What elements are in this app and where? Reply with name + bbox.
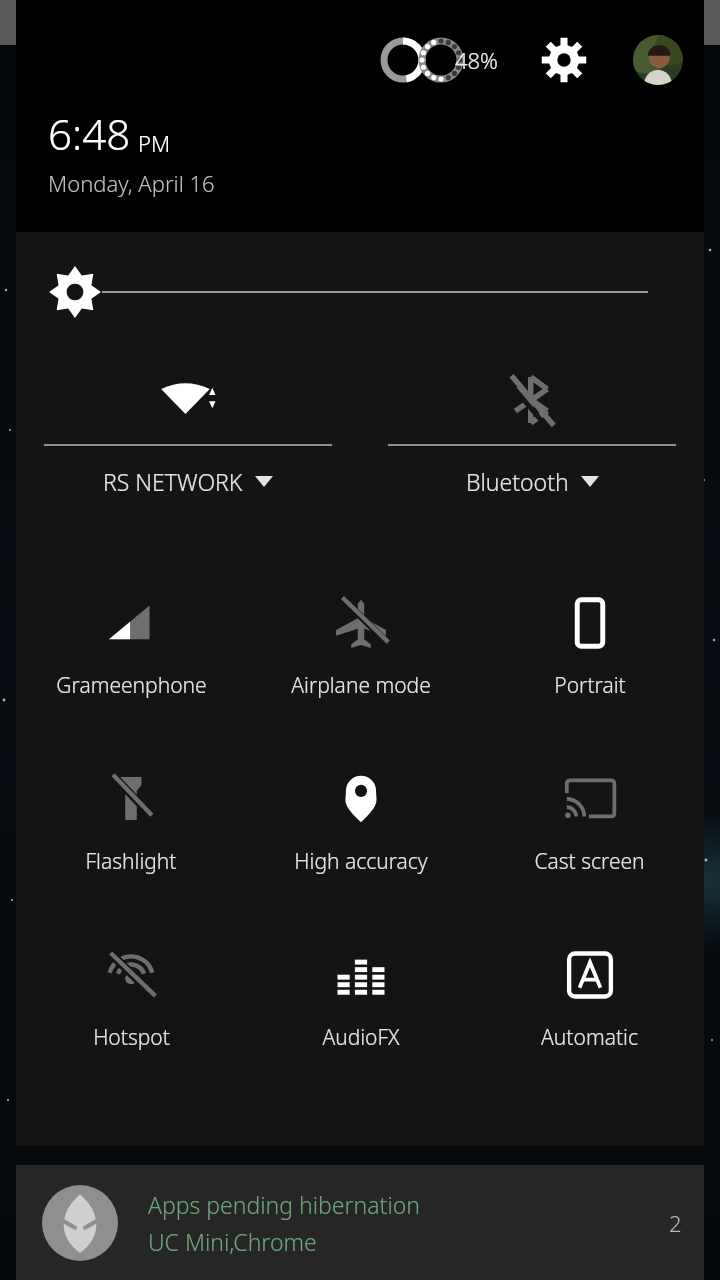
staticText: Bluetooth xyxy=(466,466,569,497)
staticText: Cast screen xyxy=(534,847,645,876)
staticText: Automatic xyxy=(541,1023,638,1052)
staticText: Flashlight xyxy=(85,847,177,876)
staticText: UC Mini,Chrome xyxy=(148,1226,317,1257)
staticText: Portrait xyxy=(554,671,626,700)
button[interactable]: Portrait xyxy=(475,568,704,744)
staticText: 48% xyxy=(455,45,498,75)
button[interactable]: Hotspot xyxy=(16,920,246,1096)
button[interactable]: High accuracy xyxy=(246,744,475,920)
button[interactable]: Grameenphone xyxy=(16,568,246,744)
staticText: 6:48 xyxy=(48,105,131,162)
button[interactable]: User profile xyxy=(633,35,683,85)
button[interactable]: Automatic xyxy=(475,920,704,1096)
button[interactable]: Cast screen xyxy=(475,744,704,920)
button[interactable]: Brightness xyxy=(16,232,704,352)
button[interactable]: RS NETWORK xyxy=(16,352,360,542)
staticText: AudioFX xyxy=(322,1023,400,1052)
staticText: Grameenphone xyxy=(56,671,207,700)
button[interactable]: Airplane mode xyxy=(246,568,475,744)
staticText: RS NETWORK xyxy=(103,466,243,497)
button[interactable]: Settings xyxy=(538,34,590,86)
button[interactable]: Apps pending hibernation xyxy=(16,1165,704,1280)
button[interactable]: Flashlight xyxy=(16,744,246,920)
staticText: Airplane mode xyxy=(291,671,431,700)
staticText: Hotspot xyxy=(93,1023,170,1052)
button[interactable]: Bluetooth xyxy=(360,352,704,542)
staticText: Monday, April 16 xyxy=(48,168,215,198)
staticText: High accuracy xyxy=(294,847,428,876)
button[interactable]: AudioFX xyxy=(246,920,475,1096)
staticText: 2 xyxy=(669,1208,682,1238)
staticText: Apps pending hibernation xyxy=(148,1189,420,1220)
staticText: PM xyxy=(138,128,171,158)
